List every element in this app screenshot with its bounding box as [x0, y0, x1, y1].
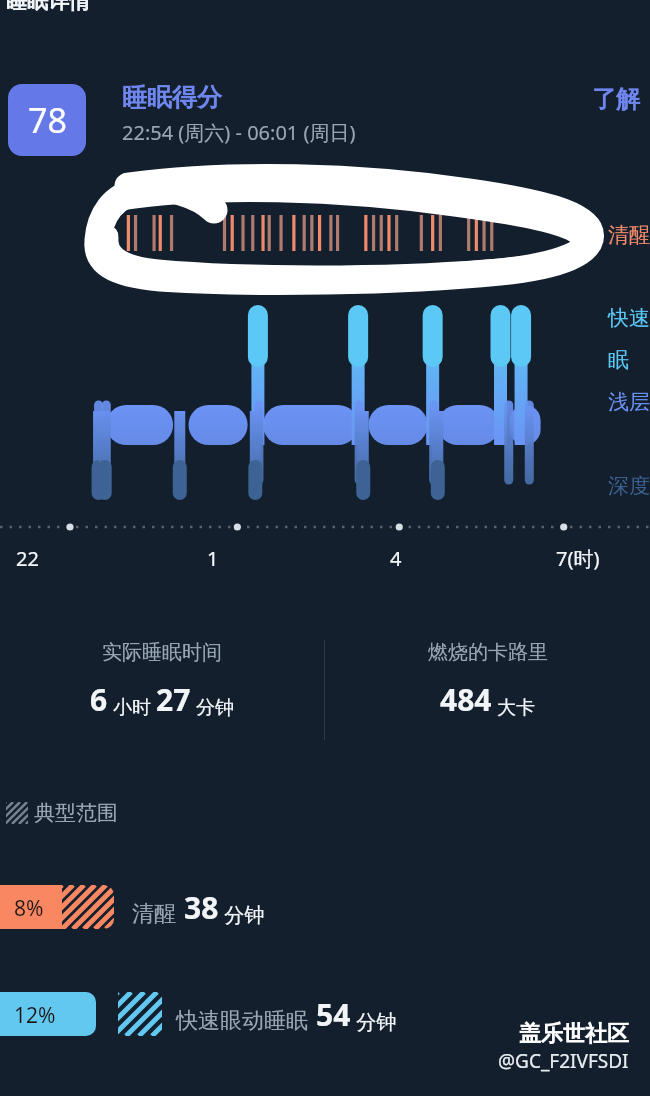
staticText: 实际睡眠时间 — [102, 640, 222, 665]
staticText: @GC_F2IVFSDI — [498, 1048, 629, 1074]
button[interactable]: 实际睡眠时间 — [0, 640, 324, 720]
staticText: 了解 — [592, 84, 640, 114]
staticText: 睡眠得分 — [122, 82, 222, 113]
staticText: 清醒 — [132, 900, 176, 928]
staticText: 484 — [440, 679, 492, 720]
staticText: 22 — [16, 545, 39, 572]
staticText: 6 — [90, 679, 108, 720]
staticText: 54 — [316, 994, 351, 1035]
staticText: 快速 — [608, 305, 650, 331]
staticText: 眠 — [608, 347, 629, 373]
button[interactable]: 清醒 — [0, 885, 265, 929]
staticText: 盖乐世社区 — [519, 1020, 629, 1048]
staticText: 大卡 — [492, 694, 535, 720]
staticText: 分钟 — [191, 694, 234, 720]
staticText: 38 — [184, 887, 219, 928]
staticText: 27 — [156, 679, 191, 720]
staticText: 典型范围 — [34, 800, 118, 826]
staticText: 1 — [207, 545, 219, 572]
staticText: 分钟 — [219, 901, 265, 928]
staticText: 快速眼动睡眠 — [176, 1007, 308, 1035]
staticText: 深度 — [608, 473, 650, 499]
staticText: 浅层 — [608, 389, 650, 415]
staticText: 清醒 — [608, 222, 650, 248]
staticText: 22:54 (周六) - 06:01 (周日) — [122, 119, 356, 146]
staticText: 分钟 — [351, 1008, 397, 1035]
staticText: 睡眠详情 — [6, 0, 90, 14]
staticText: 燃烧的卡路里 — [428, 640, 548, 665]
button[interactable]: 78 — [8, 84, 86, 156]
staticText: 12% — [14, 1001, 56, 1030]
button[interactable]: 典型范围 — [6, 800, 118, 826]
button[interactable]: 了解 — [592, 84, 640, 114]
staticText: 78 — [28, 97, 67, 143]
staticText: 4 — [390, 545, 402, 572]
staticText: 小时 — [108, 694, 156, 720]
button[interactable]: 快速眼动睡眠 — [0, 992, 397, 1036]
staticText: 7(时) — [556, 545, 600, 572]
staticText: 8% — [14, 894, 44, 923]
button[interactable]: 燃烧的卡路里 — [325, 640, 650, 720]
